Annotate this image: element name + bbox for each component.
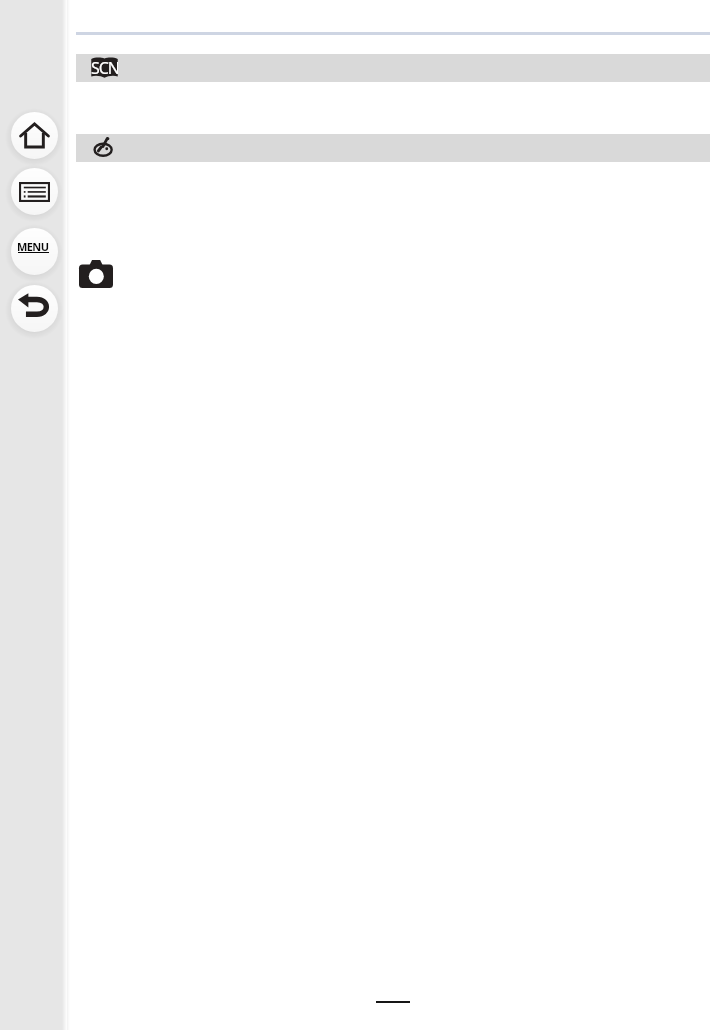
staticText: MENU [17, 239, 49, 254]
staticText: SCN [91, 57, 118, 78]
button[interactable]: Menu [11, 228, 58, 275]
button[interactable]: Home [11, 112, 58, 159]
button[interactable]: Contents [11, 168, 58, 215]
button[interactable]: Back [11, 285, 58, 332]
